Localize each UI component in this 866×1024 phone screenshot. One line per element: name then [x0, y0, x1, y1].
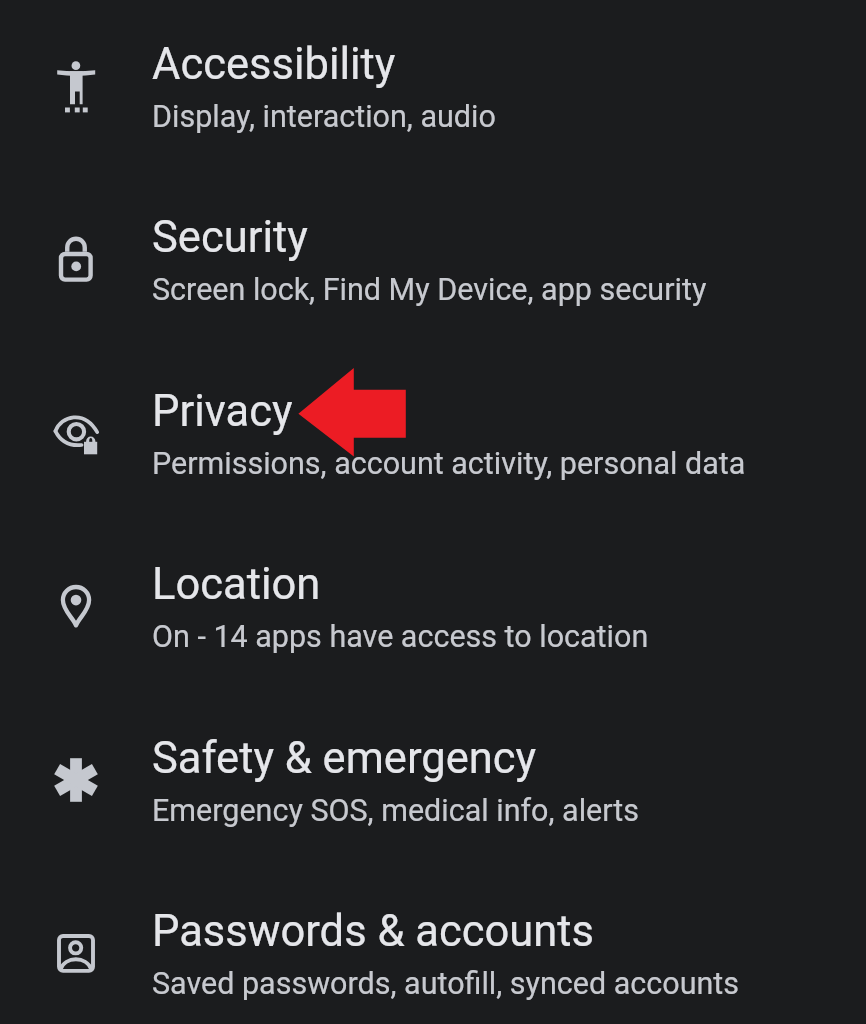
staticText: Passwords & accounts [152, 906, 594, 957]
other: Passwords and accounts [0, 926, 152, 982]
staticText: Privacy [152, 386, 293, 437]
other: Safety and emergency [0, 753, 152, 809]
button[interactable]: Privacy [0, 347, 866, 520]
staticText: Screen lock, Find My Device, app securit… [152, 272, 707, 308]
staticText: Emergency SOS, medical info, alerts [152, 793, 640, 829]
staticText: Security [152, 212, 308, 263]
staticText: On - 14 apps have access to location [152, 619, 649, 655]
staticText: Safety & emergency [152, 733, 537, 784]
staticText: Permissions, account activity, personal … [152, 446, 746, 482]
other: Privacy [0, 406, 152, 462]
button[interactable]: Safety and emergency [0, 694, 866, 867]
staticText: Location [152, 559, 321, 610]
other: Accessibility [0, 59, 152, 115]
other: Location [0, 579, 152, 635]
staticText: Saved passwords, autofill, synced accoun… [152, 966, 740, 1002]
other: Security [0, 232, 152, 288]
staticText: Accessibility [152, 39, 396, 90]
button[interactable]: Accessibility [0, 0, 866, 173]
button[interactable]: Passwords and accounts [0, 867, 866, 1024]
button[interactable]: Security [0, 173, 866, 346]
button[interactable]: Location [0, 520, 866, 693]
staticText: Display, interaction, audio [152, 99, 496, 135]
